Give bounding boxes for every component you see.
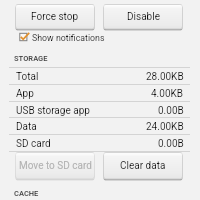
button[interactable]: SD card <box>0 135 200 152</box>
staticText: Move to SD card <box>19 160 92 172</box>
staticText: Total <box>16 71 39 83</box>
staticText: SD card <box>16 138 51 150</box>
other: Show notifications <box>19 32 31 42</box>
staticText: Force stop <box>31 11 79 23</box>
button[interactable]: Clear data <box>103 152 183 181</box>
staticText: Data <box>16 121 37 133</box>
staticText: Disable <box>127 11 160 23</box>
button[interactable]: Total <box>0 68 200 85</box>
staticText: Clear data <box>120 160 166 172</box>
staticText: USB storage app <box>16 105 90 117</box>
staticText: CACHE <box>14 189 39 198</box>
button[interactable]: App <box>0 85 200 102</box>
staticText: 0.00B <box>158 138 184 150</box>
button[interactable]: Force stop <box>15 4 95 31</box>
button[interactable]: Data <box>0 118 200 135</box>
staticText: 0.00B <box>158 105 184 117</box>
staticText: 24.00KB <box>146 121 184 133</box>
staticText: App <box>16 88 34 100</box>
staticText: Show notifications <box>32 33 105 43</box>
staticText: 28.00KB <box>146 71 184 83</box>
button[interactable]: Show notifications <box>17 29 107 43</box>
button[interactable]: Move to SD card <box>15 152 95 181</box>
staticText: STORAGE <box>14 54 48 63</box>
button[interactable]: Disable <box>103 4 183 31</box>
staticText: 4.00KB <box>151 88 184 100</box>
button[interactable]: USB storage app <box>0 102 200 119</box>
